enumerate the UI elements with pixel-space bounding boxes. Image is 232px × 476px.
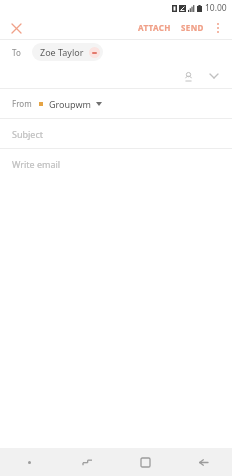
other: Remove Zoe Taylor	[89, 47, 100, 58]
button[interactable]: Subject	[0, 119, 232, 148]
button[interactable]: Recent apps	[58, 448, 116, 476]
button[interactable]: Back	[174, 448, 232, 476]
staticText: SEND	[181, 22, 204, 33]
button[interactable]: SEND	[176, 17, 209, 38]
button[interactable]: Close	[5, 17, 27, 39]
staticText: From	[12, 98, 32, 109]
staticText: ATTACH	[138, 22, 171, 33]
button[interactable]: From	[0, 89, 232, 118]
button[interactable]: ATTACH	[133, 17, 176, 38]
button[interactable]: Home	[116, 448, 174, 476]
staticText: 10.00	[205, 2, 227, 14]
button[interactable]: Write email	[0, 149, 232, 178]
button[interactable]: Add from contacts	[179, 67, 197, 85]
staticText: Subject	[12, 128, 44, 140]
staticText: Zoe Taylor	[40, 46, 84, 58]
button[interactable]: More options	[209, 19, 227, 37]
staticText: Write email	[12, 158, 61, 170]
button[interactable]: Show Cc and Bcc	[205, 67, 223, 85]
staticText: To	[12, 47, 21, 58]
button[interactable]: Zoe Taylor	[32, 43, 103, 61]
staticText: Groupwm	[49, 98, 91, 110]
button[interactable]: Notifications	[0, 448, 58, 476]
